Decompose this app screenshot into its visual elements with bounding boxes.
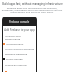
staticText: Realtime Database [5,52,28,55]
staticText: Firebase console [9,20,30,24]
staticText: Authentication [6,42,24,45]
staticText: Build apps fast, without managing infras… [2,2,63,6]
staticText: Analytics and performance [5,34,36,40]
button[interactable]: Cloud Storage [3,57,36,60]
button[interactable]: Firebase console [3,17,36,26]
button[interactable]: Get started [5,70,36,72]
button[interactable]: Analytics and performance [5,34,36,40]
staticText: Cloud Storage [6,57,23,60]
button[interactable]: Crashlytics reports [5,63,36,66]
button[interactable]: Cloud Firestore database [5,47,36,50]
staticText: Cloud Firestore database [5,47,35,50]
button[interactable]: Authentication [3,42,36,45]
staticText: Add Firebase to your app [3,28,36,32]
staticText: Firebase gives you functionality like an… [1,6,63,13]
staticText: Crashlytics reports [5,63,27,66]
button[interactable]: Realtime Database [5,52,36,55]
